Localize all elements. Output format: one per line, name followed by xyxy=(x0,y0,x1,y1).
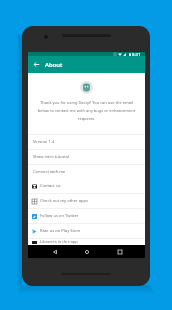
staticText: Version 1.4 xyxy=(33,139,55,145)
button[interactable]: Rate us on Play Store xyxy=(28,224,145,238)
button[interactable]: Follow us on Twitter xyxy=(28,209,145,223)
button[interactable]: Home xyxy=(80,245,93,258)
staticText: Follow us on Twitter xyxy=(40,213,79,219)
button[interactable]: Show intro tutorial xyxy=(28,150,145,164)
staticText: Show intro tutorial xyxy=(33,154,69,160)
staticText: Thank you for using Dactyl! You can use … xyxy=(35,100,138,121)
staticText: Rate us on Play Store xyxy=(40,228,81,234)
staticText: About xyxy=(45,61,63,69)
button[interactable]: Libraries in this app xyxy=(28,239,145,245)
button[interactable]: Back xyxy=(48,245,61,258)
button[interactable]: Navigate up xyxy=(28,56,45,73)
staticText: Contact us xyxy=(40,183,61,189)
button[interactable]: Recent apps xyxy=(113,245,126,258)
staticText: 8:31 xyxy=(132,52,141,56)
staticText: Libraries in this app xyxy=(40,239,78,245)
button[interactable]: Version 1.4 xyxy=(28,135,145,149)
button[interactable]: Connect with me xyxy=(28,165,145,179)
button[interactable]: Contact us xyxy=(28,179,145,193)
staticText: Connect with me xyxy=(33,169,66,175)
button[interactable]: Check out my other apps xyxy=(28,194,145,208)
staticText: Check out my other apps xyxy=(40,198,89,204)
